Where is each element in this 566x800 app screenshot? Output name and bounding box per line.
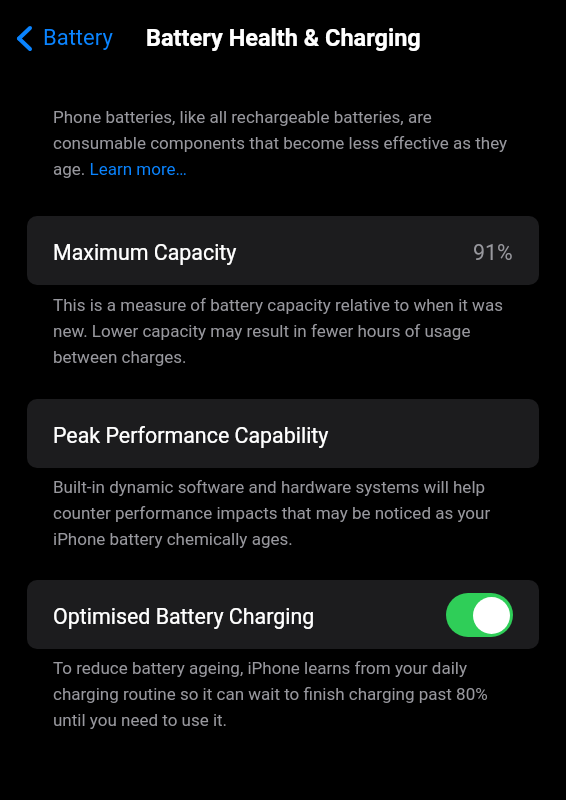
button[interactable]: Back to Battery xyxy=(11,20,119,56)
staticText: To reduce battery ageing, iPhone learns … xyxy=(53,658,515,730)
button[interactable]: Phone batteries, like all rechargeable b… xyxy=(53,107,515,179)
staticText: Built-in dynamic software and hardware s… xyxy=(53,477,515,549)
button[interactable]: Peak Performance Capability xyxy=(27,399,539,468)
staticText: This is a measure of battery capacity re… xyxy=(53,295,515,367)
staticText: Battery xyxy=(43,25,113,51)
button[interactable]: Optimised Battery Charging xyxy=(27,580,539,649)
button[interactable]: Optimised Battery Charging, on xyxy=(446,593,513,637)
staticText: 91% xyxy=(473,240,513,265)
staticText: Optimised Battery Charging xyxy=(53,604,315,629)
staticText: Battery Health & Charging xyxy=(146,24,421,52)
staticText: Peak Performance Capability xyxy=(53,423,329,448)
staticText: Maximum Capacity xyxy=(53,240,237,265)
button[interactable]: Maximum Capacity xyxy=(27,216,539,285)
